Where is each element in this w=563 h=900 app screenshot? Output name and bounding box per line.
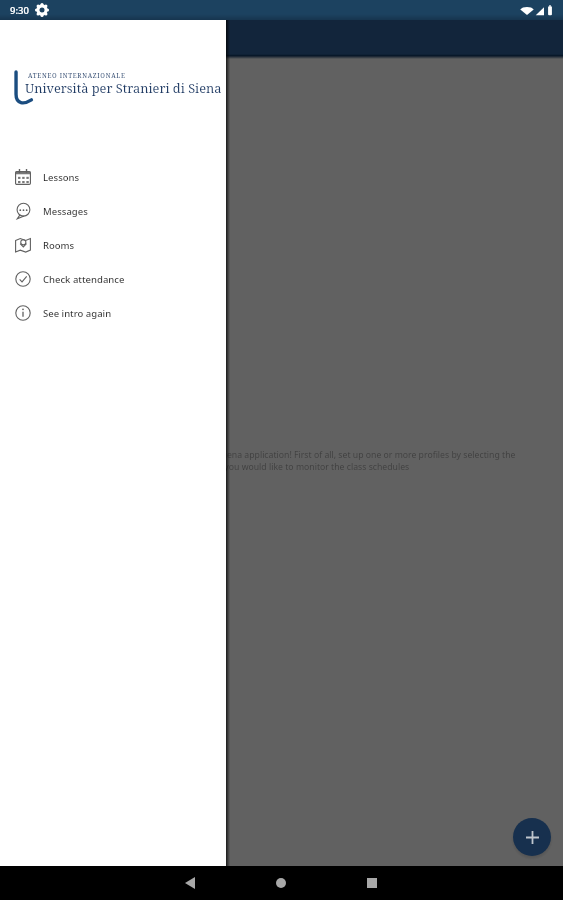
- staticText: See intro again: [43, 307, 112, 320]
- button[interactable]: Home: [267, 866, 295, 900]
- staticText: Università per Stranieri di Siena: [25, 79, 222, 96]
- staticText: ATENEO INTERNAZIONALE: [28, 71, 126, 79]
- button[interactable]: Recent apps: [358, 866, 386, 900]
- button[interactable]: Add profile: [513, 818, 551, 856]
- button[interactable]: Rooms: [0, 228, 226, 262]
- staticText: Rooms: [43, 239, 75, 252]
- button[interactable]: See intro again: [0, 296, 226, 330]
- staticText: Lessons: [43, 171, 80, 184]
- button[interactable]: Check attendance: [0, 262, 226, 296]
- staticText: Messages: [43, 205, 88, 218]
- button[interactable]: Back: [176, 866, 204, 900]
- button[interactable]: Lessons: [0, 160, 226, 194]
- button[interactable]: Messages: [0, 194, 226, 228]
- staticText: Welcome to the Università per Stranieri …: [0, 449, 563, 473]
- staticText: Check attendance: [43, 273, 125, 286]
- staticText: 9:30: [10, 4, 29, 17]
